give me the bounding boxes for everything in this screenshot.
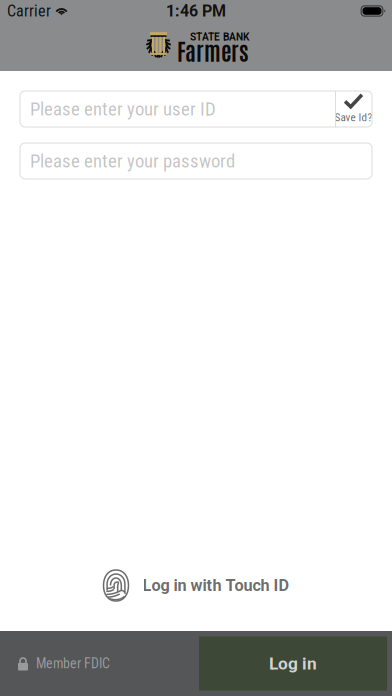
staticText: Please enter your password bbox=[30, 150, 235, 172]
button[interactable]: Log in bbox=[199, 636, 387, 690]
button[interactable]: Save Id? bbox=[335, 91, 372, 127]
button[interactable]: Log in with Touch ID bbox=[102, 563, 289, 608]
staticText: Log in bbox=[269, 653, 317, 674]
staticText: Member FDIC bbox=[36, 655, 110, 672]
staticText: Save Id? bbox=[334, 111, 372, 124]
staticText: Carrier bbox=[7, 2, 51, 20]
staticText: 1:46 PM bbox=[166, 2, 226, 20]
staticText: STATE BANK bbox=[190, 31, 249, 43]
staticText: Please enter your user ID bbox=[30, 98, 216, 120]
staticText: Log in with Touch ID bbox=[142, 576, 289, 595]
staticText: Farmers bbox=[177, 35, 249, 65]
